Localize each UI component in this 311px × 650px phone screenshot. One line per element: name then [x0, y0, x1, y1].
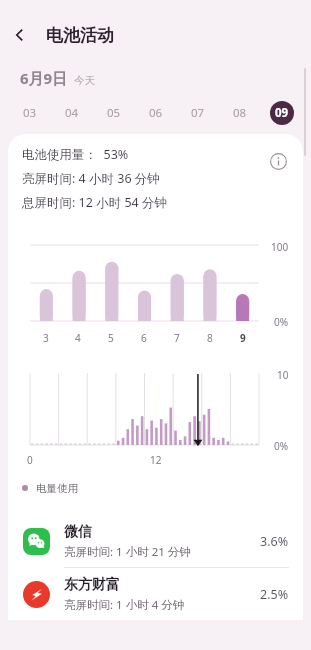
staticText: 9: [240, 331, 246, 345]
staticText: 5: [108, 331, 114, 345]
staticText: 息屏时间: 12 小时 54 分钟: [22, 194, 167, 211]
button[interactable]: 07: [177, 98, 219, 128]
staticText: 10: [277, 368, 289, 382]
staticText: 100: [271, 240, 289, 254]
staticText: 8: [207, 331, 213, 345]
button[interactable]: 03: [8, 98, 51, 128]
staticText: 06: [149, 105, 163, 121]
staticText: 6月9日: [20, 68, 68, 88]
staticText: 电池使用量： 53%: [22, 146, 129, 163]
button[interactable]: 06: [135, 98, 177, 128]
staticText: 亮屏时间: 4 小时 36 分钟: [22, 170, 160, 187]
staticText: 03: [23, 105, 37, 121]
staticText: 0: [27, 453, 33, 467]
button[interactable]: Back: [0, 18, 40, 52]
staticText: 07: [191, 105, 205, 121]
staticText: 微信: [64, 523, 92, 541]
staticText: 3.6%: [260, 533, 289, 550]
staticText: 东方财富: [64, 576, 120, 594]
staticText: 0%: [274, 439, 289, 453]
staticText: 2.5%: [260, 586, 289, 603]
staticText: 6: [141, 331, 147, 345]
button[interactable]: 东方财富: [8, 568, 303, 620]
button[interactable]: 09: [261, 98, 303, 128]
staticText: 7: [174, 331, 180, 345]
button[interactable]: Information: [263, 146, 293, 176]
staticText: 亮屏时间: 1 小时 21 分钟: [64, 544, 191, 560]
staticText: 4: [75, 331, 81, 345]
button[interactable]: 05: [93, 98, 135, 128]
staticText: 3: [43, 331, 49, 345]
button[interactable]: 微信: [8, 515, 303, 567]
staticText: 04: [65, 105, 79, 121]
staticText: 今天: [74, 74, 95, 87]
staticText: 09: [275, 105, 289, 121]
button[interactable]: 04: [51, 98, 93, 128]
staticText: 08: [233, 105, 247, 121]
staticText: 电量使用: [36, 482, 78, 495]
staticText: 电池活动: [46, 25, 114, 46]
staticText: 亮屏时间: 1 小时 4 分钟: [64, 597, 185, 613]
staticText: 12: [150, 453, 162, 467]
staticText: 05: [107, 105, 121, 121]
button[interactable]: 08: [219, 98, 261, 128]
staticText: 0%: [274, 315, 289, 329]
